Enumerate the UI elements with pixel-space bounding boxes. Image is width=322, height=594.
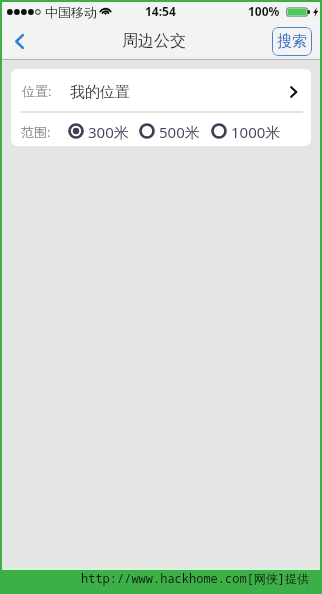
staticText: 中国移动	[45, 4, 97, 20]
button[interactable]: 1000米	[211, 120, 281, 140]
staticText: 300米	[88, 122, 129, 142]
staticText: 范围:	[21, 123, 51, 141]
staticText: 位置:	[22, 82, 52, 100]
staticText: http://www.hackhome.com[网侠]提供	[81, 570, 310, 586]
button[interactable]: Back	[2, 23, 38, 59]
staticText: 周边公交	[122, 31, 186, 51]
button[interactable]: 500米	[139, 120, 200, 140]
staticText: 我的位置	[70, 83, 130, 102]
staticText: 14:54	[145, 3, 176, 19]
staticText: 1000米	[231, 122, 281, 142]
button[interactable]: 位置:	[11, 69, 311, 111]
staticText: 搜索	[277, 32, 307, 51]
button[interactable]: 300米	[68, 120, 129, 140]
staticText: 500米	[159, 122, 200, 142]
button[interactable]: 搜索	[272, 27, 312, 56]
staticText: 100%	[248, 3, 280, 19]
